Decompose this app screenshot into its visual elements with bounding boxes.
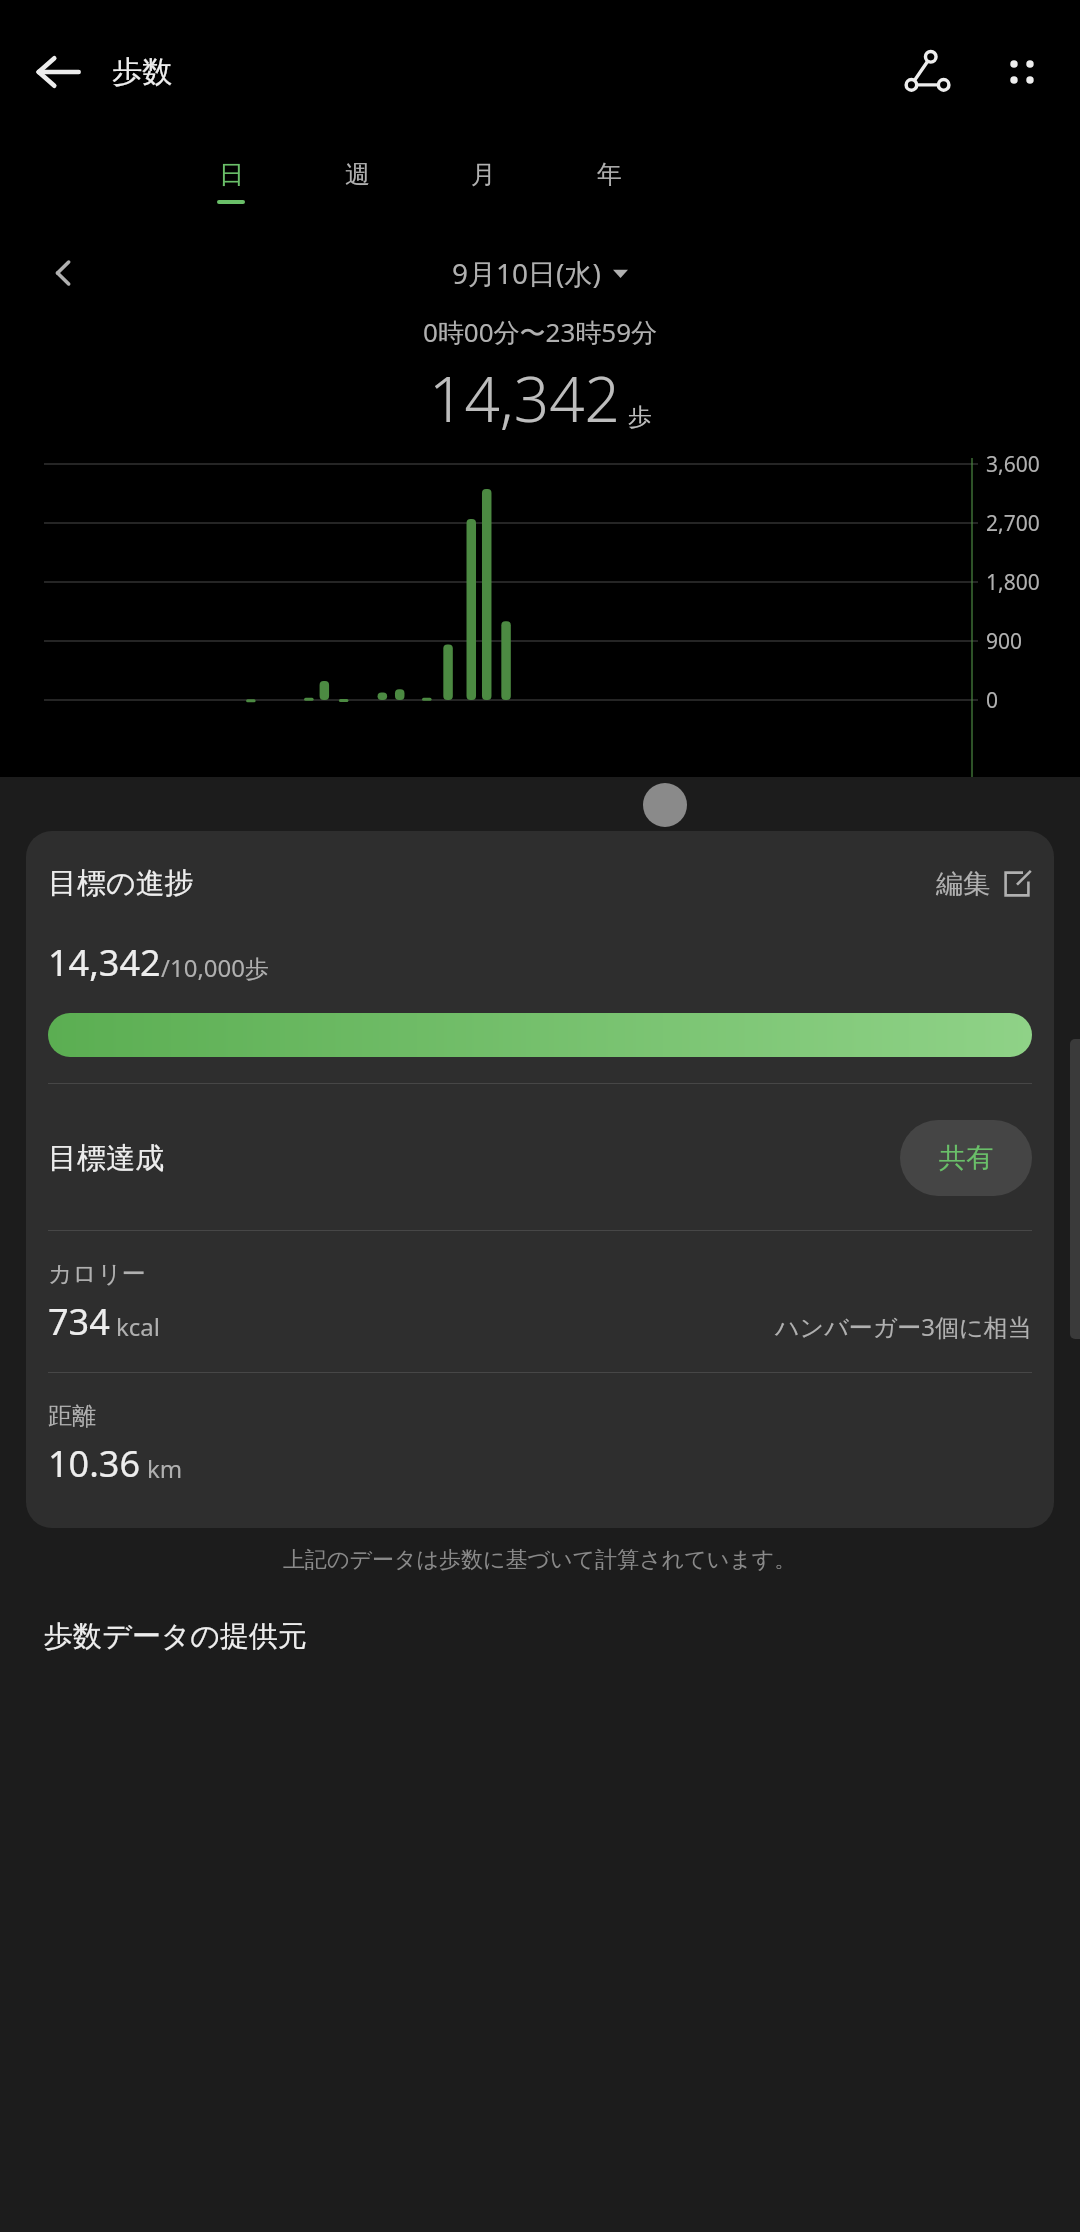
button[interactable]: 月 [452, 143, 514, 238]
staticText: 共有 [939, 1141, 993, 1175]
button[interactable]: 年 [578, 143, 640, 238]
staticText: km [147, 1452, 183, 1485]
button[interactable]: 9月10日(水) [452, 254, 628, 292]
staticText: 9月10日(水) [452, 254, 601, 292]
staticText: 2,700 [986, 509, 1040, 538]
button[interactable]: 日 [200, 143, 262, 238]
staticText: 14,342 [48, 938, 161, 987]
staticText: 週 [345, 159, 370, 190]
staticText: 18:00 [455, 807, 512, 837]
staticText: 0時00分〜23時59分 [423, 314, 658, 350]
staticText: カロリー [48, 1259, 146, 1289]
staticText: 900 [986, 627, 1023, 656]
staticText: 14,342 [429, 356, 620, 440]
staticText: 10.36 [48, 1439, 141, 1488]
staticText: 編集 [936, 867, 990, 901]
staticText: 歩数 [112, 53, 172, 91]
staticText: ハンバーガー3個に相当 [775, 1310, 1032, 1343]
button[interactable]: 共有 [900, 1120, 1032, 1196]
staticText: 0:00 [52, 807, 96, 837]
button[interactable]: More options [984, 34, 1060, 110]
staticText: 年 [597, 159, 622, 190]
staticText: kcal [116, 1310, 160, 1343]
staticText: 月 [471, 159, 496, 190]
staticText: 日 [219, 159, 244, 190]
staticText: 上記のデータは歩数に基づいて計算されています。 [283, 1546, 797, 1574]
staticText: 歩数データの提供元 [44, 1618, 308, 1655]
staticText: 734 [48, 1297, 110, 1346]
staticText: 3,600 [986, 450, 1040, 479]
button[interactable]: 編集 [936, 867, 1032, 901]
staticText: 24:00 [590, 772, 644, 801]
staticText: 距離 [48, 1401, 96, 1431]
button[interactable]: Share [890, 34, 966, 110]
button[interactable]: Back [20, 34, 96, 110]
staticText: 目標の進捗 [48, 865, 194, 902]
button[interactable]: 週 [326, 143, 388, 238]
staticText: 目標達成 [48, 1140, 164, 1177]
staticText: 12:00 [318, 807, 375, 837]
button[interactable]: Expand [643, 783, 687, 827]
staticText: 6:00 [190, 807, 234, 837]
staticText: 0 [986, 686, 999, 715]
staticText: 1,800 [986, 568, 1040, 597]
staticText: /10,000歩 [161, 951, 269, 984]
staticText: 歩 [628, 402, 652, 432]
button[interactable]: Previous day [36, 245, 92, 301]
